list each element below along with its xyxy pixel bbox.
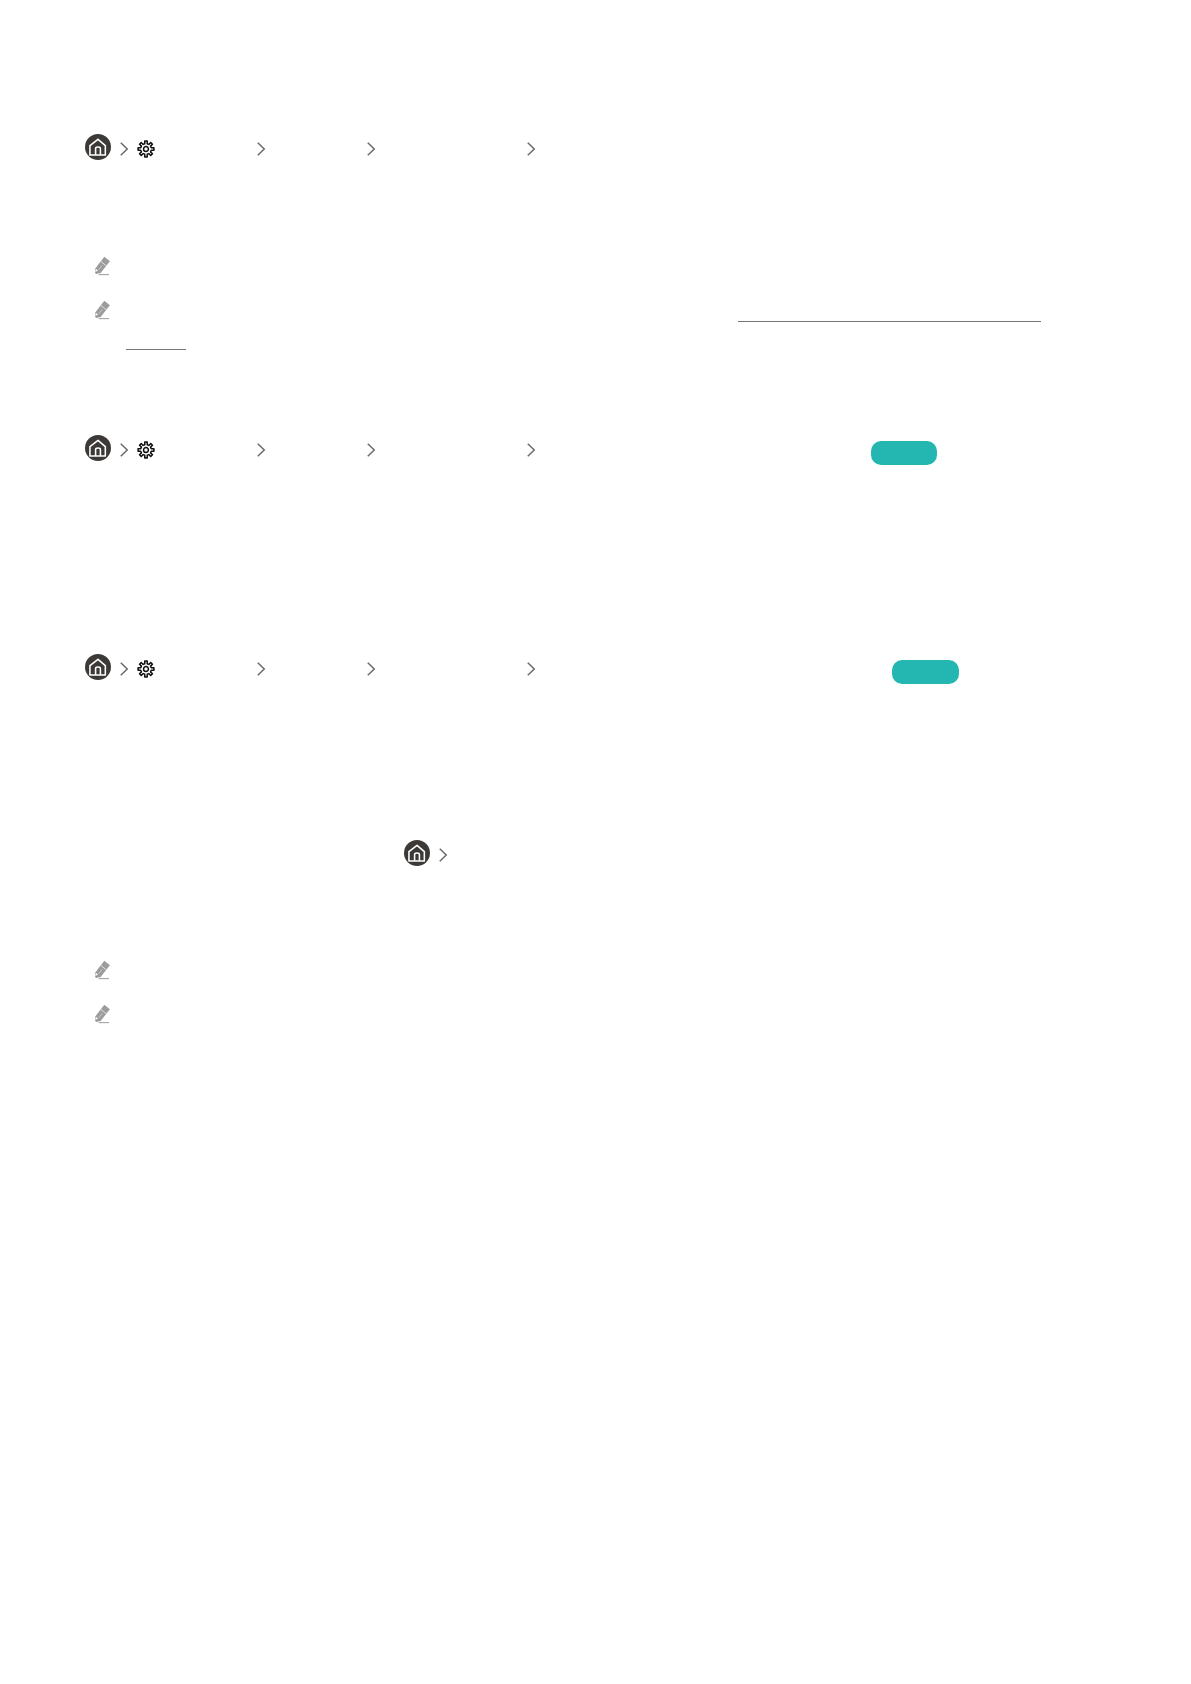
button[interactable]: Settings <box>137 441 155 459</box>
button[interactable]: Home <box>404 840 430 866</box>
button[interactable]: Settings <box>137 660 155 678</box>
button[interactable]: Home <box>85 435 111 461</box>
button[interactable]: Try Now <box>871 441 937 465</box>
button[interactable]: Try Now <box>892 660 959 684</box>
button[interactable]: Home <box>85 654 111 680</box>
button[interactable]: Settings <box>137 140 155 158</box>
button[interactable]: Home <box>85 134 111 160</box>
